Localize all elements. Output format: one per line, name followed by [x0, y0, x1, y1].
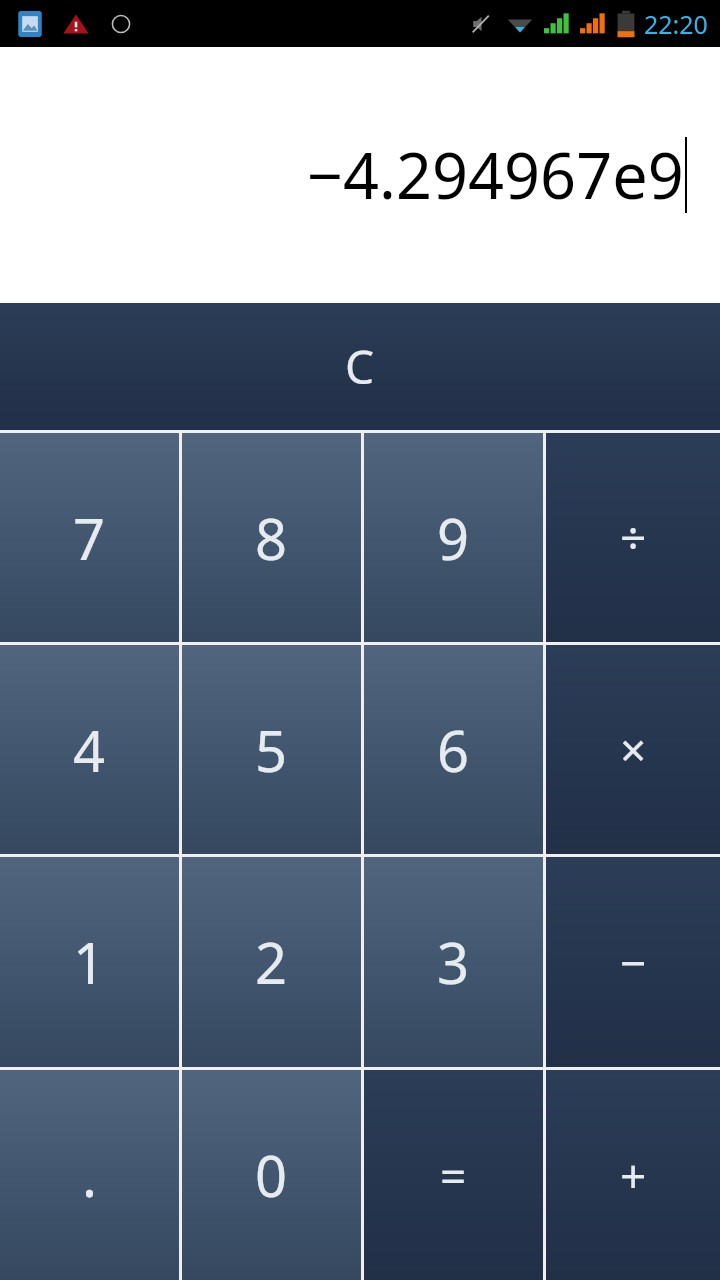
staticText: 4	[73, 712, 106, 788]
staticText: ×	[620, 718, 647, 781]
button[interactable]: Clear	[0, 303, 720, 430]
button[interactable]: 3	[364, 857, 543, 1067]
staticText: .	[82, 1137, 98, 1213]
staticText: 6	[437, 712, 470, 788]
button[interactable]: Decimal point	[0, 1070, 179, 1280]
button[interactable]: 2	[182, 857, 361, 1067]
button[interactable]: 7	[0, 433, 179, 642]
button[interactable]: 5	[182, 645, 361, 854]
staticText: 7	[73, 500, 106, 576]
button[interactable]: 6	[364, 645, 543, 854]
staticText: −4.294967e9	[307, 132, 684, 218]
button[interactable]: 0	[182, 1070, 361, 1280]
staticText: C	[345, 335, 375, 398]
staticText: =	[440, 1144, 467, 1207]
staticText: 0	[255, 1137, 288, 1213]
staticText: ÷	[620, 506, 647, 569]
button[interactable]: 9	[364, 433, 543, 642]
staticText: 8	[255, 500, 288, 576]
staticText: 5	[255, 712, 288, 788]
staticText: 3	[437, 924, 470, 1000]
staticText: 9	[437, 500, 470, 576]
button[interactable]: Subtract	[546, 857, 720, 1067]
button[interactable]: 1	[0, 857, 179, 1067]
button[interactable]: Equals	[364, 1070, 543, 1280]
button[interactable]: Add	[546, 1070, 720, 1280]
staticText: +	[620, 1144, 647, 1207]
staticText: 22:20	[644, 7, 708, 41]
button[interactable]: 8	[182, 433, 361, 642]
staticText: −	[620, 931, 647, 994]
staticText: 2	[255, 924, 288, 1000]
button[interactable]: 4	[0, 645, 179, 854]
button[interactable]: Multiply	[546, 645, 720, 854]
staticText: 1	[73, 924, 106, 1000]
button[interactable]: Divide	[546, 433, 720, 642]
